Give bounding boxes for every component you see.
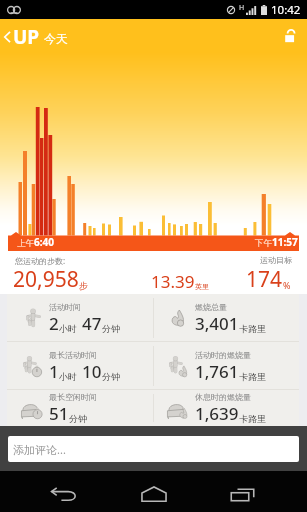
staticText: 10:42 [271,2,301,18]
button[interactable]: UP [3,24,68,50]
staticText: 51 [49,402,69,425]
staticText: 添加评论... [13,442,66,457]
button[interactable]: 添加评论... [8,436,299,462]
staticText: 英里 [195,282,209,291]
staticText: 最长空闲时间 [49,392,97,402]
staticText: 卡路里 [239,371,266,382]
staticText: 小时 [59,323,77,334]
button[interactable]: 休息时的燃烧量 [153,390,299,426]
button[interactable]: Recents [216,473,268,512]
staticText: 最长活动时间 [49,350,97,360]
staticText: 3,401 [195,312,239,335]
staticText: 卡路里 [239,323,266,334]
button[interactable]: 燃烧总量 [153,294,299,342]
staticText: 174 [246,265,283,294]
staticText: 2 [49,312,59,335]
staticText: 分钟 [69,413,87,424]
staticText: 分钟 [102,323,120,334]
staticText: 卡路里 [239,413,266,424]
staticText: 今天 [44,31,68,46]
staticText: 1,639 [195,402,239,425]
staticText: 上午 [17,238,34,249]
staticText: 10 [82,360,102,383]
staticText: 小时 [59,371,77,382]
button[interactable]: Home [128,473,180,512]
button[interactable]: 活动时间 [7,294,153,342]
staticText: H [239,3,245,13]
staticText: 1 [49,360,59,383]
staticText: 47 [82,312,102,335]
staticText: 1,761 [195,360,239,383]
staticText: % [283,279,291,291]
button[interactable]: Back [38,473,90,512]
staticText: 活动时间 [49,302,81,312]
staticText: 6:40 [34,235,54,249]
button[interactable]: 活动时的燃烧量 [153,342,299,390]
staticText: 下午 [255,238,272,249]
staticText: 活动时的燃烧量 [195,350,251,360]
staticText: 20,958 [13,265,79,294]
staticText: 步 [79,280,88,291]
button[interactable]: 最长空闲时间 [7,390,153,426]
staticText: 13.39 [151,270,195,293]
staticText: 分钟 [102,371,120,382]
button[interactable]: 最长活动时间 [7,342,153,390]
staticText: 燃烧总量 [195,302,227,312]
staticText: 您运动的步数: [15,255,66,266]
staticText: UP [13,24,40,50]
staticText: 11:57 [272,235,298,249]
button[interactable]: Lock [278,24,302,48]
staticText: 运动目标 [260,255,292,265]
staticText: 休息时的燃烧量 [195,392,251,402]
